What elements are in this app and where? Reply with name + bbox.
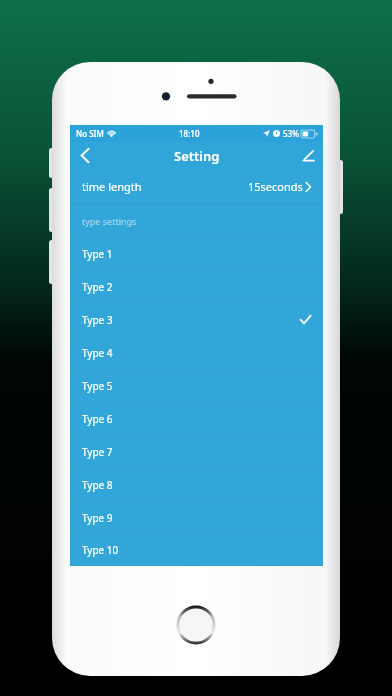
staticText: No SIM xyxy=(76,128,104,139)
button[interactable]: Back xyxy=(70,142,100,169)
staticText: Type 9 xyxy=(82,511,113,525)
button[interactable]: Type 4 xyxy=(70,336,323,369)
button[interactable]: Type 2 xyxy=(70,270,323,303)
staticText: Type 10 xyxy=(82,543,119,557)
staticText: Setting xyxy=(174,147,220,165)
button[interactable]: Type 3 xyxy=(70,303,323,336)
staticText: type settings xyxy=(82,215,137,227)
button[interactable]: Type 10 xyxy=(70,534,323,566)
staticText: Type 2 xyxy=(82,280,113,294)
staticText: Type 8 xyxy=(82,478,113,492)
button[interactable]: Type 9 xyxy=(70,501,323,534)
button[interactable]: time length xyxy=(70,169,323,204)
staticText: Type 1 xyxy=(82,247,113,261)
button[interactable]: Edit xyxy=(293,142,323,169)
staticText: Type 3 xyxy=(82,313,113,327)
button[interactable]: Type 7 xyxy=(70,435,323,468)
button[interactable]: Type 6 xyxy=(70,402,323,435)
staticText: 18:10 xyxy=(179,128,200,139)
button[interactable]: Home xyxy=(176,605,216,645)
button[interactable]: Type 8 xyxy=(70,468,323,501)
staticText: Type 4 xyxy=(82,346,113,360)
staticText: 15seconds xyxy=(248,179,303,194)
staticText: Type 6 xyxy=(82,412,113,426)
button[interactable]: Type 1 xyxy=(70,237,323,270)
staticText: 53% xyxy=(283,128,299,139)
button[interactable]: Type 5 xyxy=(70,369,323,402)
staticText: time length xyxy=(82,179,142,194)
staticText: Type 7 xyxy=(82,445,113,459)
staticText: Type 5 xyxy=(82,379,113,393)
